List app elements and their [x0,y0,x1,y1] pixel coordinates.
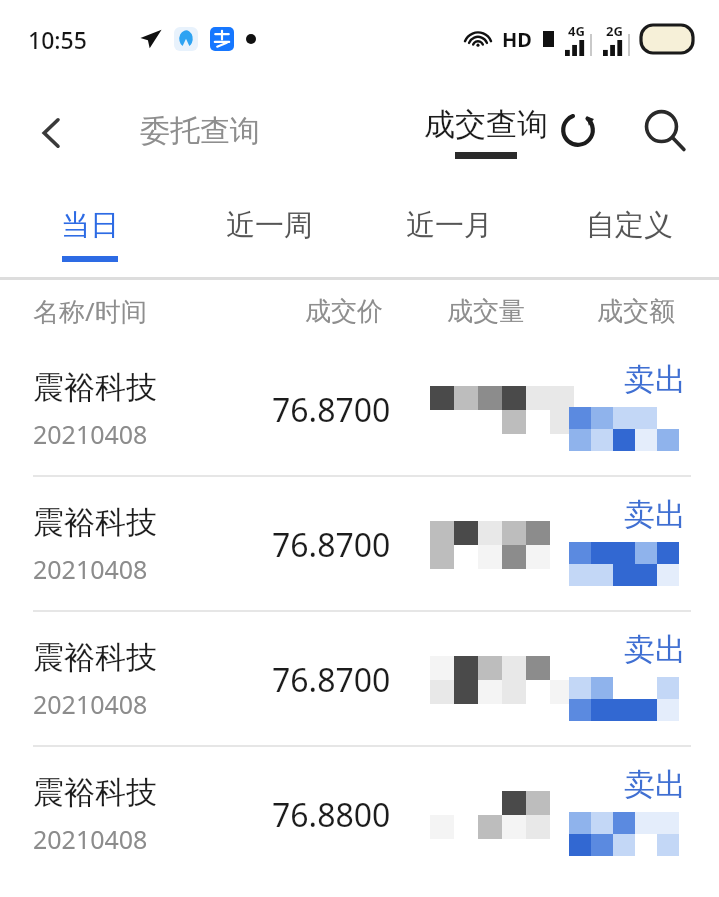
button[interactable]: 成交查询 [424,105,548,159]
staticText: 20210408 [33,687,148,721]
button[interactable]: Back [20,101,84,165]
staticText: 76.8800 [272,793,391,837]
staticText: 当日 [61,207,119,244]
button[interactable]: 自定义 [539,188,719,280]
staticText: 20210408 [33,417,148,451]
staticText: 成交价 [305,295,383,328]
staticText: 76.8700 [272,658,391,702]
staticText: 震裕科技 [33,638,157,677]
staticText: 成交查询 [424,105,548,144]
button[interactable]: 近一月 [359,188,539,280]
button[interactable]: Search [633,99,697,163]
staticText: 近一周 [226,207,313,244]
staticText: 76.8700 [272,388,391,432]
button[interactable]: 震裕科技 [0,747,719,882]
staticText: 2G [606,22,623,40]
staticText: 成交额 [597,295,675,328]
staticText: 20210408 [33,822,148,856]
staticText: 10:55 [28,24,87,55]
staticText: 卖出 [624,495,686,534]
button[interactable]: 震裕科技 [0,477,719,612]
button[interactable]: 近一周 [179,188,359,280]
button[interactable]: Refresh [548,100,608,160]
staticText: 卖出 [624,630,686,669]
staticText: 4G [568,22,585,40]
staticText: 卖出 [624,360,686,399]
staticText: 震裕科技 [33,773,157,812]
staticText: 自定义 [586,207,673,244]
staticText: 震裕科技 [33,368,157,407]
button[interactable]: 委托查询 [140,112,260,150]
staticText: 近一月 [406,207,493,244]
staticText: 76.8700 [272,523,391,567]
staticText: 卖出 [624,765,686,804]
button[interactable]: 当日 [0,188,179,280]
staticText: 震裕科技 [33,503,157,542]
staticText: 委托查询 [140,112,260,150]
staticText: HD [502,26,532,53]
button[interactable]: 震裕科技 [0,342,719,477]
staticText: 名称/时间 [33,293,147,329]
button[interactable]: 震裕科技 [0,612,719,747]
staticText: 20210408 [33,552,148,586]
staticText: 成交量 [447,295,525,328]
